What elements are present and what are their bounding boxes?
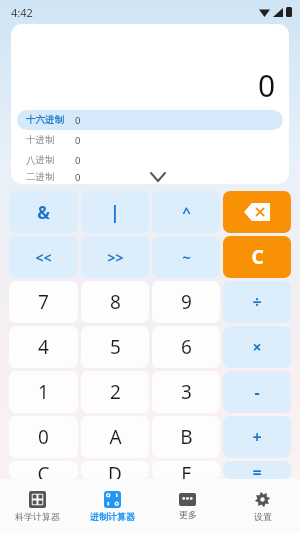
staticText: 科学计算器 bbox=[15, 511, 60, 522]
staticText: 进制计算器 bbox=[90, 511, 135, 522]
button[interactable]: 3 bbox=[152, 371, 220, 413]
staticText: ÷ bbox=[252, 291, 262, 313]
staticText: 3 bbox=[181, 379, 192, 405]
button[interactable]: & bbox=[9, 191, 78, 233]
staticText: 二进制 bbox=[26, 171, 55, 183]
staticText: 设置 bbox=[254, 511, 272, 522]
button[interactable]: × bbox=[223, 326, 291, 368]
staticText: ^ bbox=[182, 202, 191, 222]
staticText: 4 bbox=[38, 334, 49, 360]
staticText: D bbox=[108, 461, 122, 479]
button[interactable]: ÷ bbox=[223, 281, 291, 323]
button[interactable]: 十六进制 bbox=[17, 110, 283, 130]
button[interactable]: ~ bbox=[152, 236, 220, 278]
button[interactable]: 7 bbox=[9, 281, 78, 323]
staticText: 0 bbox=[38, 424, 49, 450]
staticText: 4:42 bbox=[11, 5, 33, 20]
button[interactable]: C bbox=[223, 236, 291, 278]
button[interactable]: 十进制 bbox=[17, 130, 283, 150]
staticText: ~ bbox=[182, 247, 191, 267]
staticText: B bbox=[180, 424, 193, 450]
staticText: = bbox=[252, 461, 262, 479]
button[interactable]: E bbox=[152, 461, 220, 479]
button[interactable]: 9 bbox=[152, 281, 220, 323]
button[interactable]: 八进制 bbox=[17, 150, 283, 170]
staticText: E bbox=[181, 461, 192, 479]
staticText: 十六进制 bbox=[26, 114, 64, 126]
other: Expand bbox=[151, 173, 165, 181]
button[interactable]: ^ bbox=[152, 191, 220, 233]
button[interactable]: 4 bbox=[9, 326, 78, 368]
button[interactable]: B bbox=[152, 416, 220, 458]
staticText: >> bbox=[107, 248, 124, 267]
staticText: 0 bbox=[258, 65, 276, 106]
staticText: 0 bbox=[75, 134, 81, 147]
button[interactable]: = bbox=[223, 461, 291, 479]
button[interactable]: 更多 bbox=[150, 479, 225, 533]
staticText: 十进制 bbox=[26, 134, 55, 146]
button[interactable]: Backspace bbox=[223, 191, 291, 233]
staticText: A bbox=[109, 424, 122, 450]
button[interactable]: - bbox=[223, 371, 291, 413]
staticText: 0 bbox=[75, 171, 81, 184]
button[interactable]: 5 bbox=[81, 326, 149, 368]
button[interactable]: A bbox=[81, 416, 149, 458]
staticText: << bbox=[35, 248, 52, 267]
button[interactable]: + bbox=[223, 416, 291, 458]
button[interactable]: << bbox=[9, 236, 78, 278]
staticText: 5 bbox=[110, 334, 121, 360]
button[interactable]: 0 bbox=[9, 416, 78, 458]
button[interactable]: 二进制 bbox=[17, 170, 283, 184]
staticText: 9 bbox=[181, 289, 192, 315]
staticText: × bbox=[252, 336, 262, 358]
staticText: 8 bbox=[110, 289, 121, 315]
staticText: & bbox=[37, 201, 50, 224]
button[interactable]: 进制计算器 bbox=[75, 479, 150, 533]
staticText: 2 bbox=[110, 379, 121, 405]
button[interactable]: 1 bbox=[9, 371, 78, 413]
staticText: 八进制 bbox=[26, 154, 55, 166]
button[interactable]: 设置 bbox=[225, 479, 300, 533]
staticText: 6 bbox=[181, 334, 192, 360]
button[interactable]: 6 bbox=[152, 326, 220, 368]
staticText: 0 bbox=[75, 114, 81, 127]
staticText: 1 bbox=[38, 379, 49, 405]
button[interactable]: D bbox=[81, 461, 149, 479]
staticText: 7 bbox=[38, 289, 49, 315]
button[interactable]: 2 bbox=[81, 371, 149, 413]
staticText: - bbox=[254, 381, 260, 403]
button[interactable]: >> bbox=[81, 236, 149, 278]
staticText: | bbox=[110, 201, 120, 224]
staticText: 更多 bbox=[179, 509, 197, 520]
staticText: C bbox=[251, 244, 264, 270]
button[interactable]: 8 bbox=[81, 281, 149, 323]
button[interactable]: 科学计算器 bbox=[0, 479, 75, 533]
staticText: C bbox=[37, 461, 50, 479]
button[interactable]: | bbox=[81, 191, 149, 233]
button[interactable]: C bbox=[9, 461, 78, 479]
staticText: + bbox=[252, 426, 262, 448]
staticText: 0 bbox=[75, 154, 81, 167]
